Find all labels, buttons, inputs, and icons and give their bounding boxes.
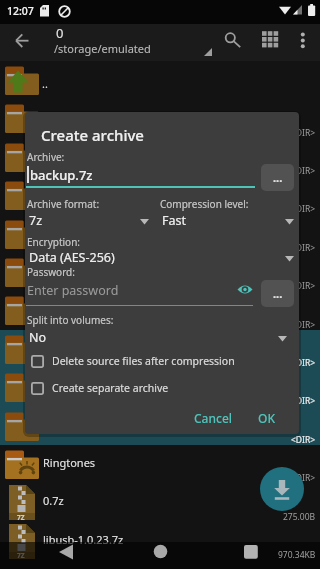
staticText: <DIR> xyxy=(291,127,316,139)
button[interactable] xyxy=(220,28,248,54)
staticText: 0.7z xyxy=(43,493,64,508)
staticText: Archive format: xyxy=(27,197,100,211)
staticText: Fast xyxy=(162,212,187,229)
staticText: Password: xyxy=(27,265,75,279)
staticText: Archive: xyxy=(27,150,65,164)
staticText: ... xyxy=(273,170,283,185)
staticText: No xyxy=(29,329,47,346)
button[interactable] xyxy=(233,540,269,566)
staticText: <DIR> xyxy=(291,280,316,292)
staticText: <DIR> xyxy=(291,357,316,369)
staticText: <DIR> xyxy=(291,165,316,177)
staticText: OK xyxy=(258,410,275,426)
button[interactable]: Cancel xyxy=(186,406,240,430)
staticText: Ringtones xyxy=(43,455,96,470)
button[interactable] xyxy=(26,280,236,306)
staticText: libusb-1.0.23.7z xyxy=(43,532,124,547)
button[interactable] xyxy=(142,540,178,566)
staticText: Create archive xyxy=(41,125,144,145)
staticText: 275.00B xyxy=(283,511,316,523)
button[interactable] xyxy=(26,164,256,190)
staticText: 12:07 xyxy=(7,4,34,18)
staticText: <DIR> xyxy=(291,242,316,254)
button[interactable] xyxy=(27,326,295,347)
staticText: <DIR> xyxy=(291,472,316,484)
staticText: Compression level: xyxy=(160,197,249,211)
button[interactable]: ... xyxy=(261,164,294,191)
button[interactable] xyxy=(48,540,84,566)
button[interactable]: OK xyxy=(246,406,286,430)
button[interactable] xyxy=(27,210,152,230)
staticText: Encryption: xyxy=(27,235,81,249)
staticText: Enter password xyxy=(27,282,119,299)
staticText: ... xyxy=(273,286,283,301)
staticText: Split into volumes: xyxy=(27,313,114,327)
staticText: Data (AES-256) xyxy=(29,249,115,266)
staticText: .. xyxy=(42,76,48,91)
button[interactable]: ... xyxy=(261,280,294,307)
staticText: 970.34KB xyxy=(278,549,316,561)
staticText: /storage/emulated xyxy=(54,41,151,56)
staticText: 0 xyxy=(56,24,64,42)
staticText: Delete source files after compression xyxy=(52,354,235,368)
staticText: <DIR> xyxy=(291,203,316,215)
button[interactable] xyxy=(292,28,314,54)
staticText: Cancel xyxy=(194,410,233,426)
button[interactable] xyxy=(4,28,32,54)
button[interactable] xyxy=(256,28,284,54)
button[interactable] xyxy=(27,378,277,399)
staticText: 7Z xyxy=(17,551,25,560)
staticText: <DIR> xyxy=(291,319,316,331)
button[interactable] xyxy=(27,351,277,372)
button[interactable] xyxy=(27,248,295,268)
button[interactable] xyxy=(237,283,254,297)
staticText: <DIR> xyxy=(291,434,316,446)
button[interactable] xyxy=(260,467,304,511)
staticText: <DIR> xyxy=(291,395,316,407)
staticText: Create separate archive xyxy=(52,381,169,395)
staticText: 7z xyxy=(29,212,43,229)
staticText: backup.7z xyxy=(30,166,93,184)
button[interactable] xyxy=(160,210,295,230)
staticText: 7Z xyxy=(17,513,25,522)
